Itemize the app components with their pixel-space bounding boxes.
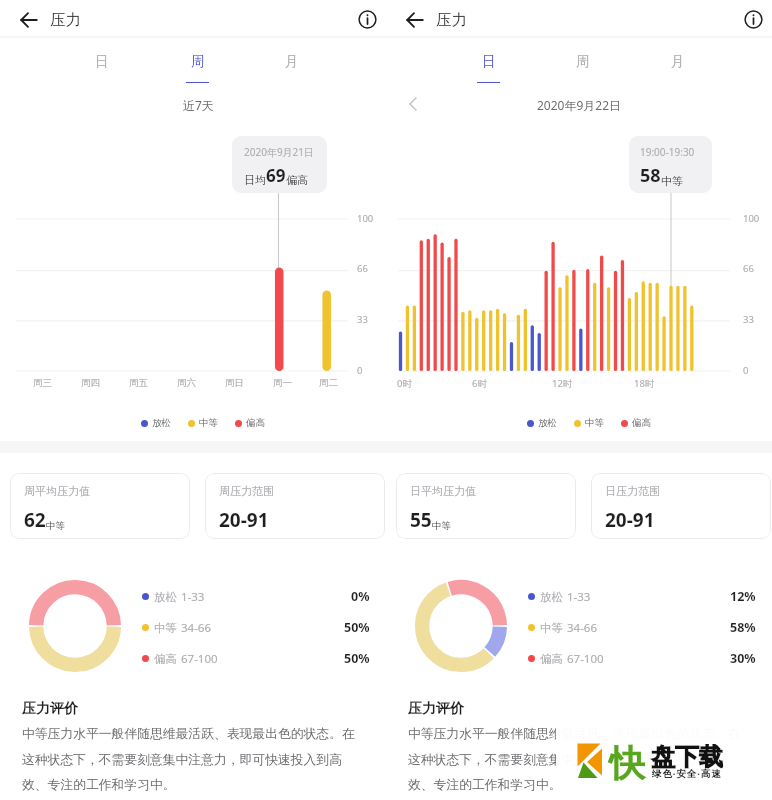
staticText: 66: [743, 262, 754, 275]
staticText: 100: [357, 212, 374, 225]
staticText: 周四: [81, 377, 100, 389]
staticText: 月: [285, 53, 299, 70]
staticText: 34-66: [567, 620, 598, 636]
staticText: 20-91: [219, 507, 269, 533]
staticText: 0: [357, 364, 363, 377]
staticText: 1-33: [567, 589, 591, 605]
staticText: 日均: [244, 173, 266, 187]
staticText: 放松: [154, 590, 177, 604]
staticText: 周压力范围: [219, 484, 274, 498]
staticText: 偏高: [540, 652, 563, 666]
staticText: 0时: [397, 377, 412, 390]
staticText: 周二: [319, 377, 338, 389]
staticText: 69: [266, 164, 286, 187]
staticText: 2020年9月21日: [244, 145, 315, 159]
staticText: 周五: [129, 377, 148, 389]
button[interactable]: 周: [553, 39, 613, 83]
staticText: 日: [482, 53, 496, 70]
staticText: 偏高: [286, 173, 308, 187]
staticText: 快: [609, 741, 645, 786]
button[interactable]: Previous day: [403, 93, 425, 115]
staticText: 1-33: [181, 589, 205, 605]
staticText: 55: [410, 507, 432, 533]
button[interactable]: Info: [742, 8, 765, 31]
staticText: 50%: [344, 650, 370, 667]
staticText: 34-66: [181, 620, 212, 636]
staticText: 近7天: [183, 97, 214, 113]
staticText: 绿色·安全·高速: [652, 767, 722, 780]
staticText: 盘下载: [651, 742, 723, 772]
button[interactable]: 日: [458, 39, 518, 83]
staticText: 压力评价: [22, 700, 78, 718]
staticText: 2020年9月22日: [537, 97, 622, 113]
staticText: 周: [191, 53, 205, 70]
staticText: 放松: [152, 417, 171, 429]
staticText: 19:00-19:30: [640, 145, 695, 159]
staticText: 压力: [436, 10, 467, 30]
button[interactable]: Back: [17, 8, 41, 32]
staticText: 30%: [730, 650, 756, 667]
staticText: 0: [743, 364, 749, 377]
staticText: 66: [357, 262, 368, 275]
staticText: 偏高: [632, 417, 651, 429]
staticText: 中等: [199, 417, 218, 429]
staticText: 压力评价: [408, 700, 464, 718]
staticText: 中等: [661, 174, 683, 188]
staticText: 周一: [273, 377, 292, 389]
button[interactable]: 月: [262, 39, 322, 83]
staticText: 日: [95, 53, 109, 70]
button[interactable]: 周平均压力值: [10, 473, 190, 539]
button[interactable]: 周: [167, 39, 227, 83]
staticText: 33: [357, 313, 368, 326]
staticText: 中等: [46, 520, 65, 532]
staticText: 放松: [538, 417, 557, 429]
staticText: 中等: [154, 621, 177, 635]
staticText: 周日: [225, 377, 244, 389]
staticText: 67-100: [567, 651, 604, 667]
button[interactable]: Info: [356, 8, 379, 31]
staticText: 6时: [472, 377, 487, 390]
button[interactable]: 月: [648, 39, 708, 83]
button[interactable]: 日: [72, 39, 132, 83]
staticText: 18时: [634, 377, 655, 390]
staticText: 周三: [33, 377, 52, 389]
staticText: 中等: [432, 520, 451, 532]
staticText: 33: [743, 313, 754, 326]
button[interactable]: 日平均压力值: [396, 473, 576, 539]
staticText: 0%: [351, 588, 370, 605]
staticText: 100: [743, 212, 760, 225]
staticText: 周: [576, 53, 590, 70]
staticText: 67-100: [181, 651, 218, 667]
staticText: 58: [640, 163, 661, 188]
staticText: 周平均压力值: [24, 484, 90, 498]
staticText: 偏高: [246, 417, 265, 429]
staticText: 日压力范围: [605, 484, 660, 498]
staticText: 中等: [540, 621, 563, 635]
button[interactable]: 日压力范围: [591, 473, 771, 539]
staticText: 20-91: [605, 507, 655, 533]
staticText: 偏高: [154, 652, 177, 666]
button[interactable]: 周压力范围: [205, 473, 385, 539]
staticText: 日平均压力值: [410, 484, 476, 498]
staticText: 中等压力水平一般伴随思维最活跃、表现最出色的状态。在这种状态下，不需要刻意集中注…: [408, 726, 753, 793]
staticText: 周六: [177, 377, 196, 389]
button[interactable]: Back: [403, 8, 427, 32]
staticText: 62: [24, 507, 46, 533]
staticText: 12时: [552, 377, 573, 390]
staticText: 月: [671, 53, 685, 70]
staticText: 50%: [344, 619, 370, 636]
staticText: 58%: [730, 619, 756, 636]
staticText: 中等压力水平一般伴随思维最活跃、表现最出色的状态。在这种状态下，不需要刻意集中注…: [22, 726, 367, 793]
staticText: 中等: [585, 417, 604, 429]
staticText: 12%: [730, 588, 756, 605]
staticText: 放松: [540, 590, 563, 604]
staticText: 压力: [50, 10, 81, 30]
